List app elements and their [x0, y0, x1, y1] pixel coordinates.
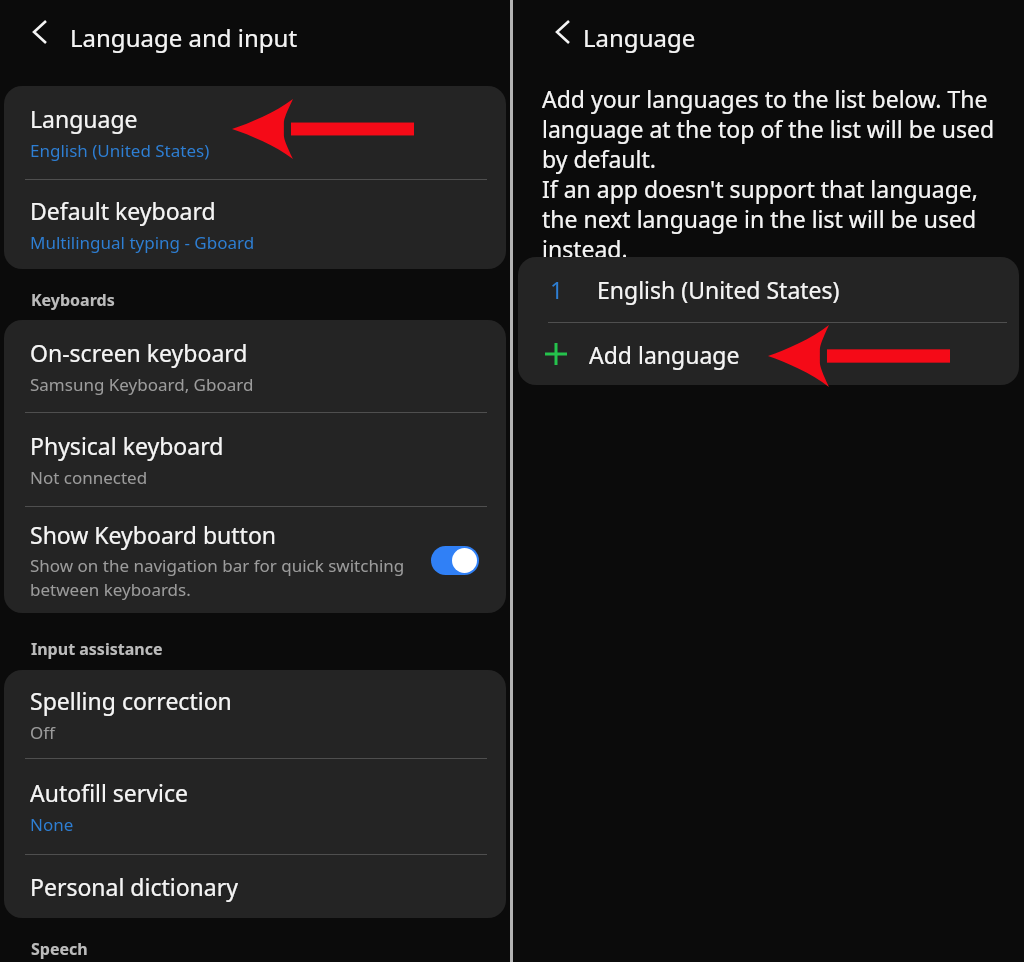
staticText: Keyboards — [31, 289, 115, 311]
staticText: Default keyboard — [30, 195, 216, 226]
staticText: Speech — [31, 938, 88, 960]
staticText: None — [30, 813, 74, 836]
button[interactable]: Autofill service — [4, 759, 506, 854]
button[interactable]: 1 — [518, 257, 1019, 322]
button[interactable]: On-screen keyboard — [4, 320, 506, 412]
staticText: Samsung Keyboard, Gboard — [30, 373, 254, 396]
button[interactable]: Back — [545, 14, 581, 50]
button[interactable]: Add language — [518, 323, 1019, 385]
staticText: Add language — [589, 339, 740, 370]
staticText: Language — [30, 103, 138, 134]
staticText: Language — [583, 21, 696, 54]
staticText: Physical keyboard — [30, 430, 224, 461]
staticText: Input assistance — [31, 638, 163, 660]
staticText: Multilingual typing - Gboard — [30, 231, 255, 254]
staticText: Spelling correction — [30, 685, 232, 716]
staticText: Autofill service — [30, 777, 188, 808]
staticText: Show Keyboard button — [30, 519, 277, 550]
staticText: Personal dictionary — [30, 871, 238, 902]
button[interactable]: Language — [4, 86, 506, 179]
staticText: Not connected — [30, 466, 148, 489]
staticText: Language and input — [70, 21, 298, 54]
button[interactable]: Spelling correction — [4, 670, 506, 758]
staticText: 1 — [550, 274, 564, 305]
staticText: English (United States) — [597, 274, 840, 305]
staticText: Add your languages to the list below. Th… — [542, 83, 1002, 264]
button[interactable]: Show Keyboard button — [4, 507, 506, 613]
staticText: Off — [30, 721, 55, 744]
button[interactable]: Default keyboard — [4, 180, 506, 269]
button[interactable]: Back — [22, 14, 58, 50]
staticText: English (United States) — [30, 139, 210, 162]
button[interactable]: Toggle Show Keyboard button — [431, 546, 479, 575]
button[interactable]: Physical keyboard — [4, 413, 506, 506]
staticText: Show on the navigation bar for quick swi… — [30, 554, 405, 601]
staticText: On-screen keyboard — [30, 337, 248, 368]
button[interactable]: Personal dictionary — [4, 855, 506, 918]
